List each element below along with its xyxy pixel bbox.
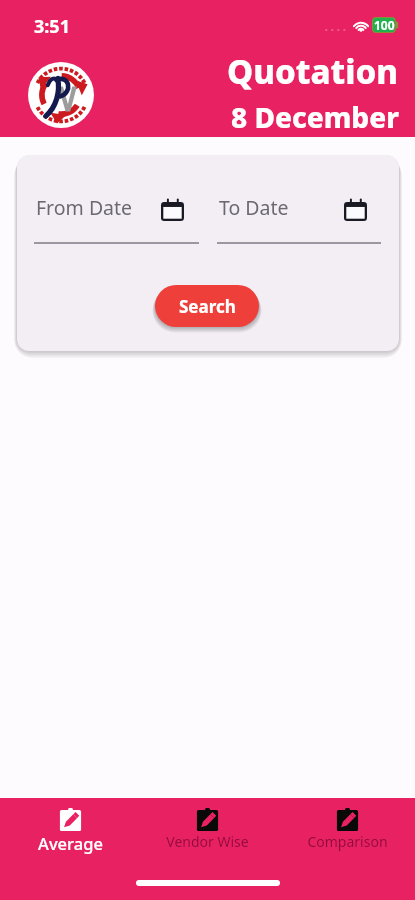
button[interactable]: To Date [217, 196, 381, 244]
button[interactable]: Comparison [292, 808, 402, 864]
button[interactable]: Average [15, 808, 125, 864]
button[interactable]: Pick From Date [161, 198, 184, 221]
staticText: To Date [219, 194, 289, 221]
staticText: Search [179, 295, 236, 318]
staticText: Vendor Wise [166, 832, 249, 851]
staticText: Quotation [227, 49, 399, 94]
staticText: 100 [374, 17, 395, 33]
staticText: From Date [36, 194, 133, 221]
button[interactable]: From Date [34, 196, 199, 244]
button[interactable]: Search [155, 285, 259, 327]
button[interactable]: Vendor Wise [152, 808, 262, 864]
staticText: Comparison [307, 832, 388, 851]
staticText: 8 December [231, 98, 399, 136]
staticText: Average [38, 832, 103, 854]
staticText: 3:51 [34, 14, 70, 39]
button[interactable]: Pick To Date [344, 198, 367, 221]
